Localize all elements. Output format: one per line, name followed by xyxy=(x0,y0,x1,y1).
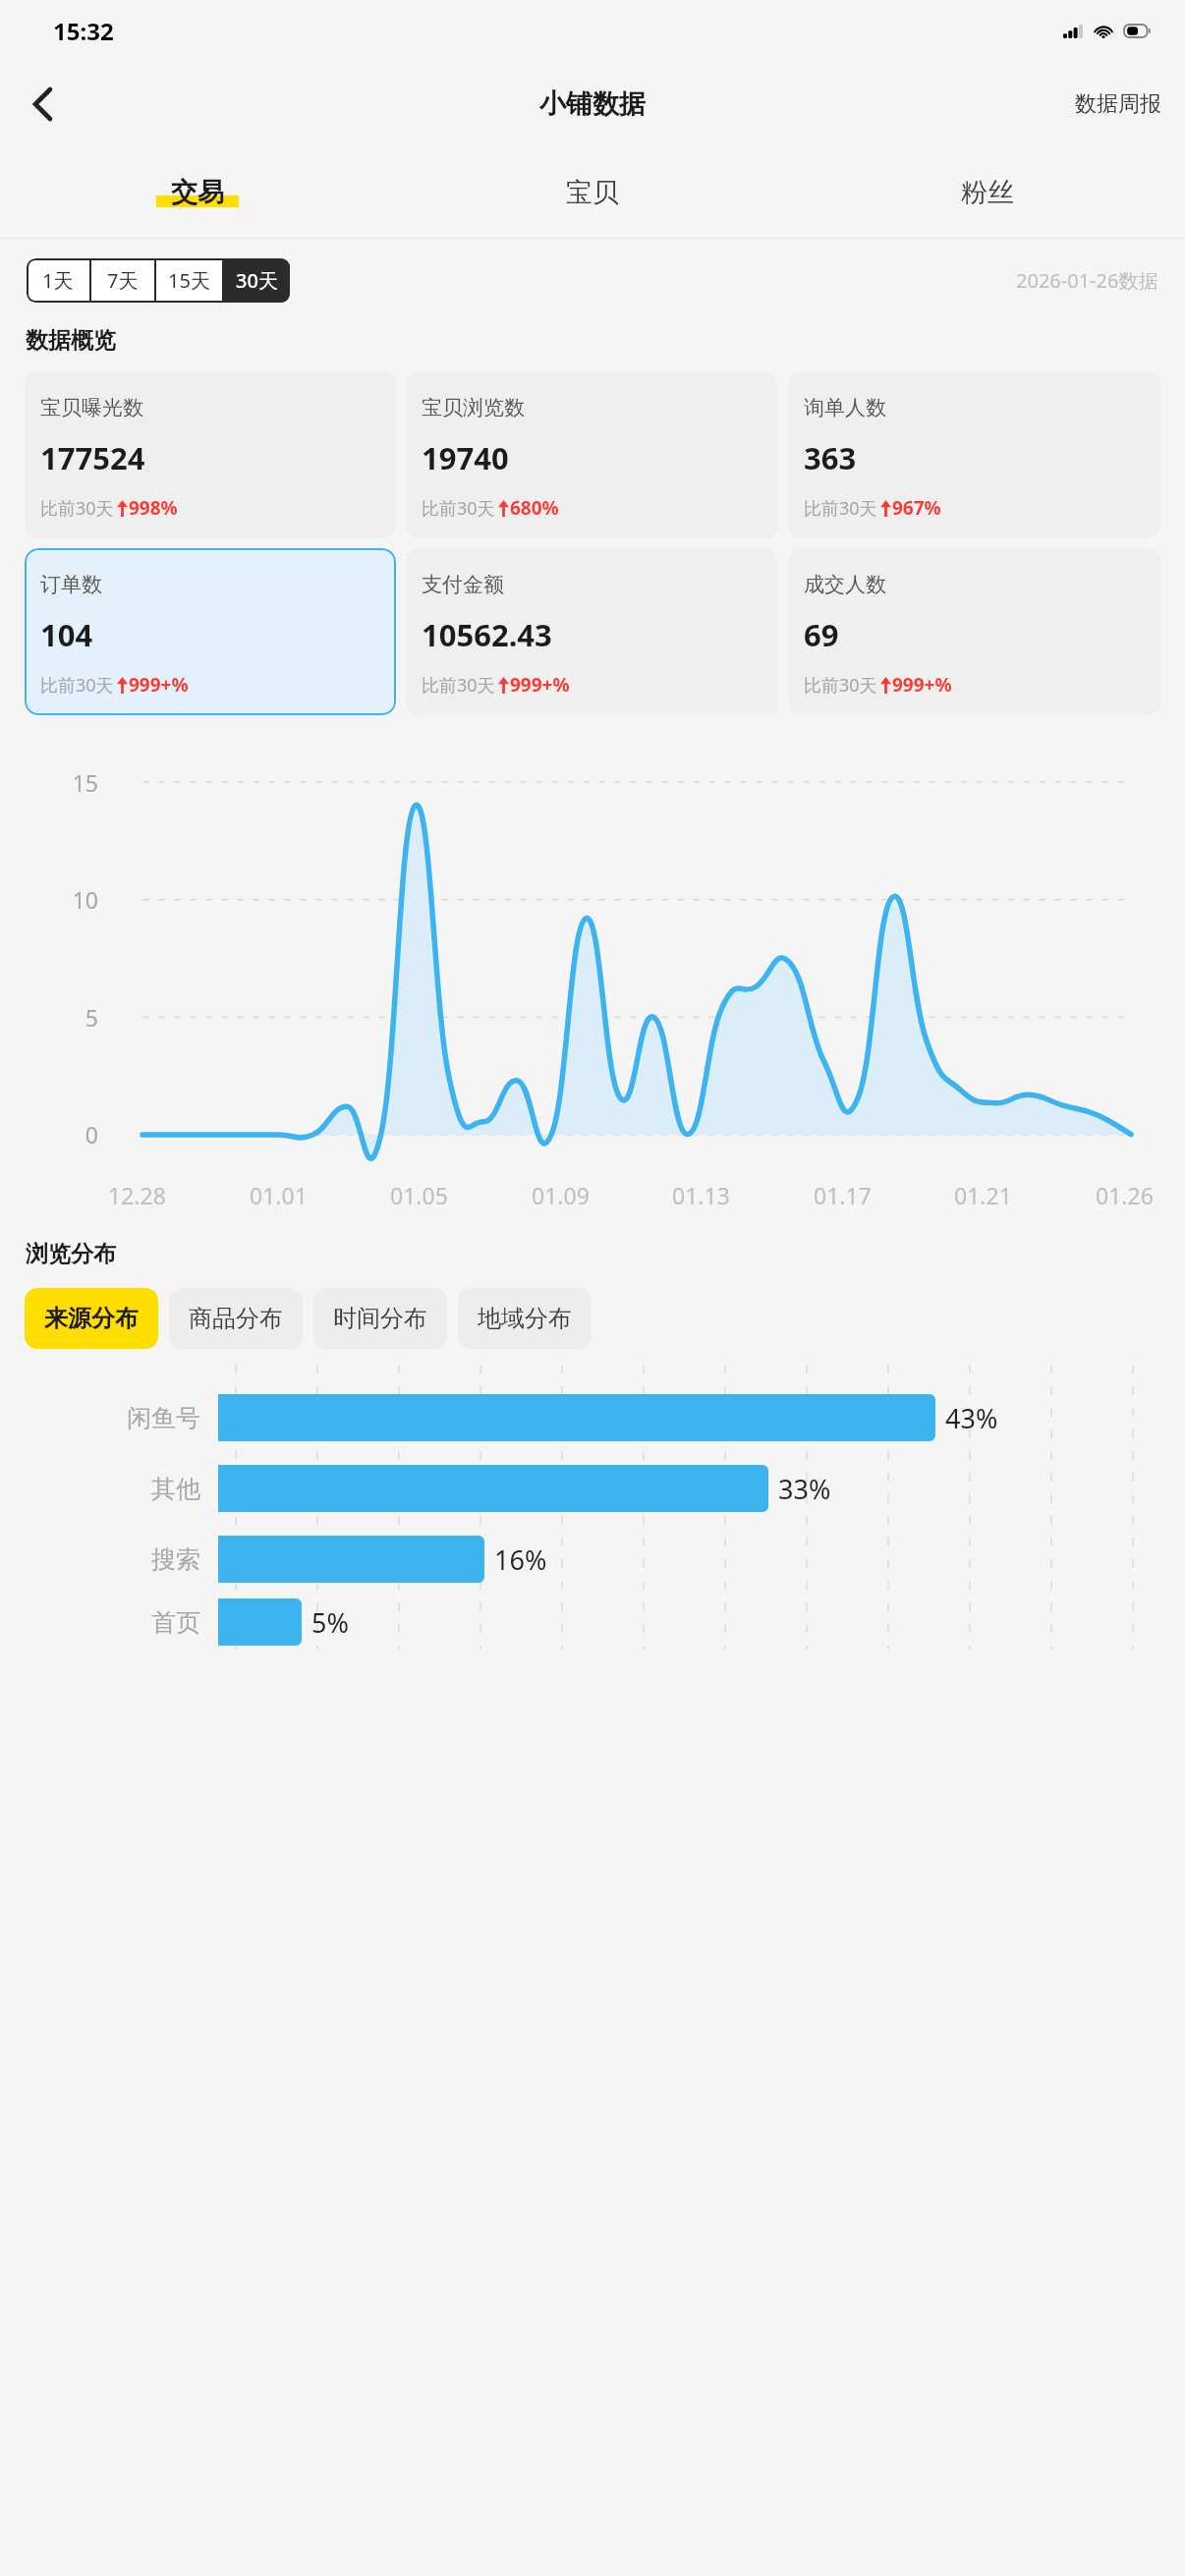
staticText: 19740 xyxy=(422,437,509,478)
staticText: 1天 xyxy=(42,267,74,294)
staticText: 5 xyxy=(51,1002,98,1033)
button[interactable]: 询单人数 xyxy=(788,371,1160,538)
staticText: 比前30天 xyxy=(804,496,877,521)
staticText: 16% xyxy=(494,1541,547,1578)
staticText: 01.09 xyxy=(532,1180,590,1210)
staticText: 订单数 xyxy=(40,572,102,597)
staticText: 999+% xyxy=(892,672,952,698)
staticText: 999+% xyxy=(129,672,189,698)
button[interactable]: 15天 xyxy=(156,258,222,303)
staticText: 01.21 xyxy=(954,1180,1012,1210)
staticText: 宝贝曝光数 xyxy=(40,395,143,420)
staticText: 2026-01-26数据 xyxy=(1016,267,1158,294)
staticText: 比前30天 xyxy=(422,673,495,698)
staticText: 15 xyxy=(51,767,98,798)
staticText: 首页 xyxy=(0,1607,200,1638)
staticText: 来源分布 xyxy=(44,1304,139,1333)
button[interactable]: 其他 xyxy=(0,1453,1185,1524)
staticText: 比前30天 xyxy=(804,673,877,698)
staticText: 宝贝浏览数 xyxy=(422,395,525,420)
staticText: 商品分布 xyxy=(189,1304,283,1333)
staticText: 30天 xyxy=(236,267,278,294)
button[interactable]: 订单数 xyxy=(25,548,396,715)
staticText: 交易 xyxy=(171,176,224,209)
staticText: 搜索 xyxy=(0,1544,200,1575)
staticText: 比前30天 xyxy=(40,496,114,521)
button[interactable]: 7天 xyxy=(91,258,154,303)
staticText: 01.17 xyxy=(814,1180,872,1210)
staticText: 69 xyxy=(804,614,839,655)
button[interactable]: 首页 xyxy=(0,1595,1185,1650)
staticText: 33% xyxy=(778,1471,831,1507)
staticText: 680% xyxy=(510,495,559,521)
staticText: 01.26 xyxy=(1096,1180,1154,1210)
staticText: 15:32 xyxy=(53,15,114,47)
button[interactable]: 宝贝 xyxy=(395,147,790,238)
staticText: 询单人数 xyxy=(804,395,886,420)
staticText: 0 xyxy=(51,1119,98,1149)
staticText: 宝贝 xyxy=(566,176,619,209)
button[interactable]: 来源分布 xyxy=(25,1288,158,1349)
button[interactable]: 闲鱼号 xyxy=(0,1382,1185,1453)
button[interactable]: 30天 xyxy=(224,258,290,303)
staticText: 01.05 xyxy=(390,1180,448,1210)
staticText: 15天 xyxy=(168,267,210,294)
staticText: 其他 xyxy=(0,1474,200,1504)
button[interactable]: 成交人数 xyxy=(788,548,1160,715)
staticText: 43% xyxy=(945,1400,998,1436)
staticText: 01.01 xyxy=(250,1180,308,1210)
staticText: 粉丝 xyxy=(961,176,1014,209)
staticText: 闲鱼号 xyxy=(0,1403,200,1433)
staticText: 177524 xyxy=(40,437,145,478)
staticText: 数据概览 xyxy=(26,326,116,355)
staticText: 支付金额 xyxy=(422,572,504,597)
staticText: 7天 xyxy=(107,267,139,294)
staticText: 比前30天 xyxy=(40,673,114,698)
staticText: 10 xyxy=(51,884,98,915)
staticText: 比前30天 xyxy=(422,496,495,521)
button[interactable]: 商品分布 xyxy=(169,1288,303,1349)
staticText: 363 xyxy=(804,437,857,478)
staticText: 10562.43 xyxy=(422,614,552,655)
staticText: 5% xyxy=(311,1604,349,1641)
staticText: 12.28 xyxy=(108,1180,166,1210)
staticText: 999+% xyxy=(510,672,570,698)
button[interactable]: Back xyxy=(14,76,71,133)
button[interactable]: 宝贝浏览数 xyxy=(406,371,778,538)
button[interactable]: 宝贝曝光数 xyxy=(25,371,396,538)
button[interactable]: 粉丝 xyxy=(790,147,1185,238)
staticText: 地域分布 xyxy=(478,1304,572,1333)
button[interactable]: 地域分布 xyxy=(458,1288,592,1349)
staticText: 967% xyxy=(892,495,941,521)
button[interactable]: 1天 xyxy=(27,258,89,303)
button[interactable]: 搜索 xyxy=(0,1524,1185,1595)
staticText: 小铺数据 xyxy=(539,87,646,121)
staticText: 浏览分布 xyxy=(26,1240,116,1268)
button[interactable]: 数据周报 xyxy=(1051,77,1185,132)
staticText: 时间分布 xyxy=(333,1304,427,1333)
button[interactable]: 时间分布 xyxy=(313,1288,447,1349)
staticText: 104 xyxy=(40,614,93,655)
staticText: 数据周报 xyxy=(1075,90,1161,118)
button[interactable]: 交易 xyxy=(0,147,395,238)
staticText: 成交人数 xyxy=(804,572,886,597)
button[interactable]: 支付金额 xyxy=(406,548,778,715)
staticText: 998% xyxy=(129,495,178,521)
staticText: 01.13 xyxy=(672,1180,730,1210)
